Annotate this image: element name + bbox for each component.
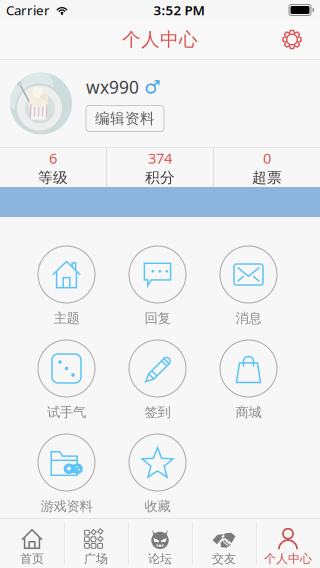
button[interactable]: 收藏 <box>112 434 203 528</box>
staticText: Carrier <box>6 1 50 19</box>
staticText: 6 <box>49 148 57 168</box>
staticText: 个人中心 <box>264 551 312 566</box>
button[interactable]: 交友 <box>192 519 256 568</box>
button[interactable]: 个人中心 <box>256 519 320 568</box>
staticText: 等级 <box>38 169 68 187</box>
staticText: 编辑资料 <box>95 109 155 127</box>
button[interactable]: 论坛 <box>128 519 192 568</box>
staticText: 试手气 <box>47 404 86 420</box>
staticText: 主题 <box>53 310 79 326</box>
button[interactable]: 主题 <box>21 246 112 340</box>
button[interactable]: 回复 <box>112 246 203 340</box>
staticText: 交友 <box>212 551 236 566</box>
staticText: 论坛 <box>148 551 172 566</box>
staticText: 收藏 <box>144 498 170 514</box>
button[interactable]: 试手气 <box>21 340 112 434</box>
staticText: 0 <box>263 148 271 168</box>
staticText: wx990 <box>86 75 139 98</box>
staticText: 签到 <box>144 404 170 420</box>
staticText: 积分 <box>145 169 175 187</box>
staticText: 374 <box>148 148 172 168</box>
staticText: 游戏资料 <box>40 498 92 514</box>
button[interactable]: 游戏资料 <box>21 434 112 528</box>
button[interactable]: 6 <box>0 148 106 187</box>
button[interactable]: 广场 <box>64 519 128 568</box>
staticText: 3:52 PM <box>153 1 204 19</box>
staticText: 消息 <box>235 310 261 326</box>
staticText: 超票 <box>252 169 282 187</box>
button[interactable]: 0 <box>214 148 320 187</box>
staticText: 商城 <box>235 404 261 420</box>
button[interactable]: 374 <box>107 148 213 187</box>
staticText: 广场 <box>84 551 108 566</box>
staticText: 回复 <box>144 310 170 326</box>
button[interactable]: 编辑资料 <box>86 105 164 131</box>
button[interactable]: 首页 <box>0 519 64 568</box>
staticText: 个人中心 <box>122 28 198 51</box>
staticText: ♂ <box>144 76 161 98</box>
button[interactable]: 签到 <box>112 340 203 434</box>
button[interactable]: 设置 <box>272 19 320 59</box>
button[interactable]: 商城 <box>203 340 294 434</box>
button[interactable]: 消息 <box>203 246 294 340</box>
staticText: 首页 <box>20 551 44 566</box>
